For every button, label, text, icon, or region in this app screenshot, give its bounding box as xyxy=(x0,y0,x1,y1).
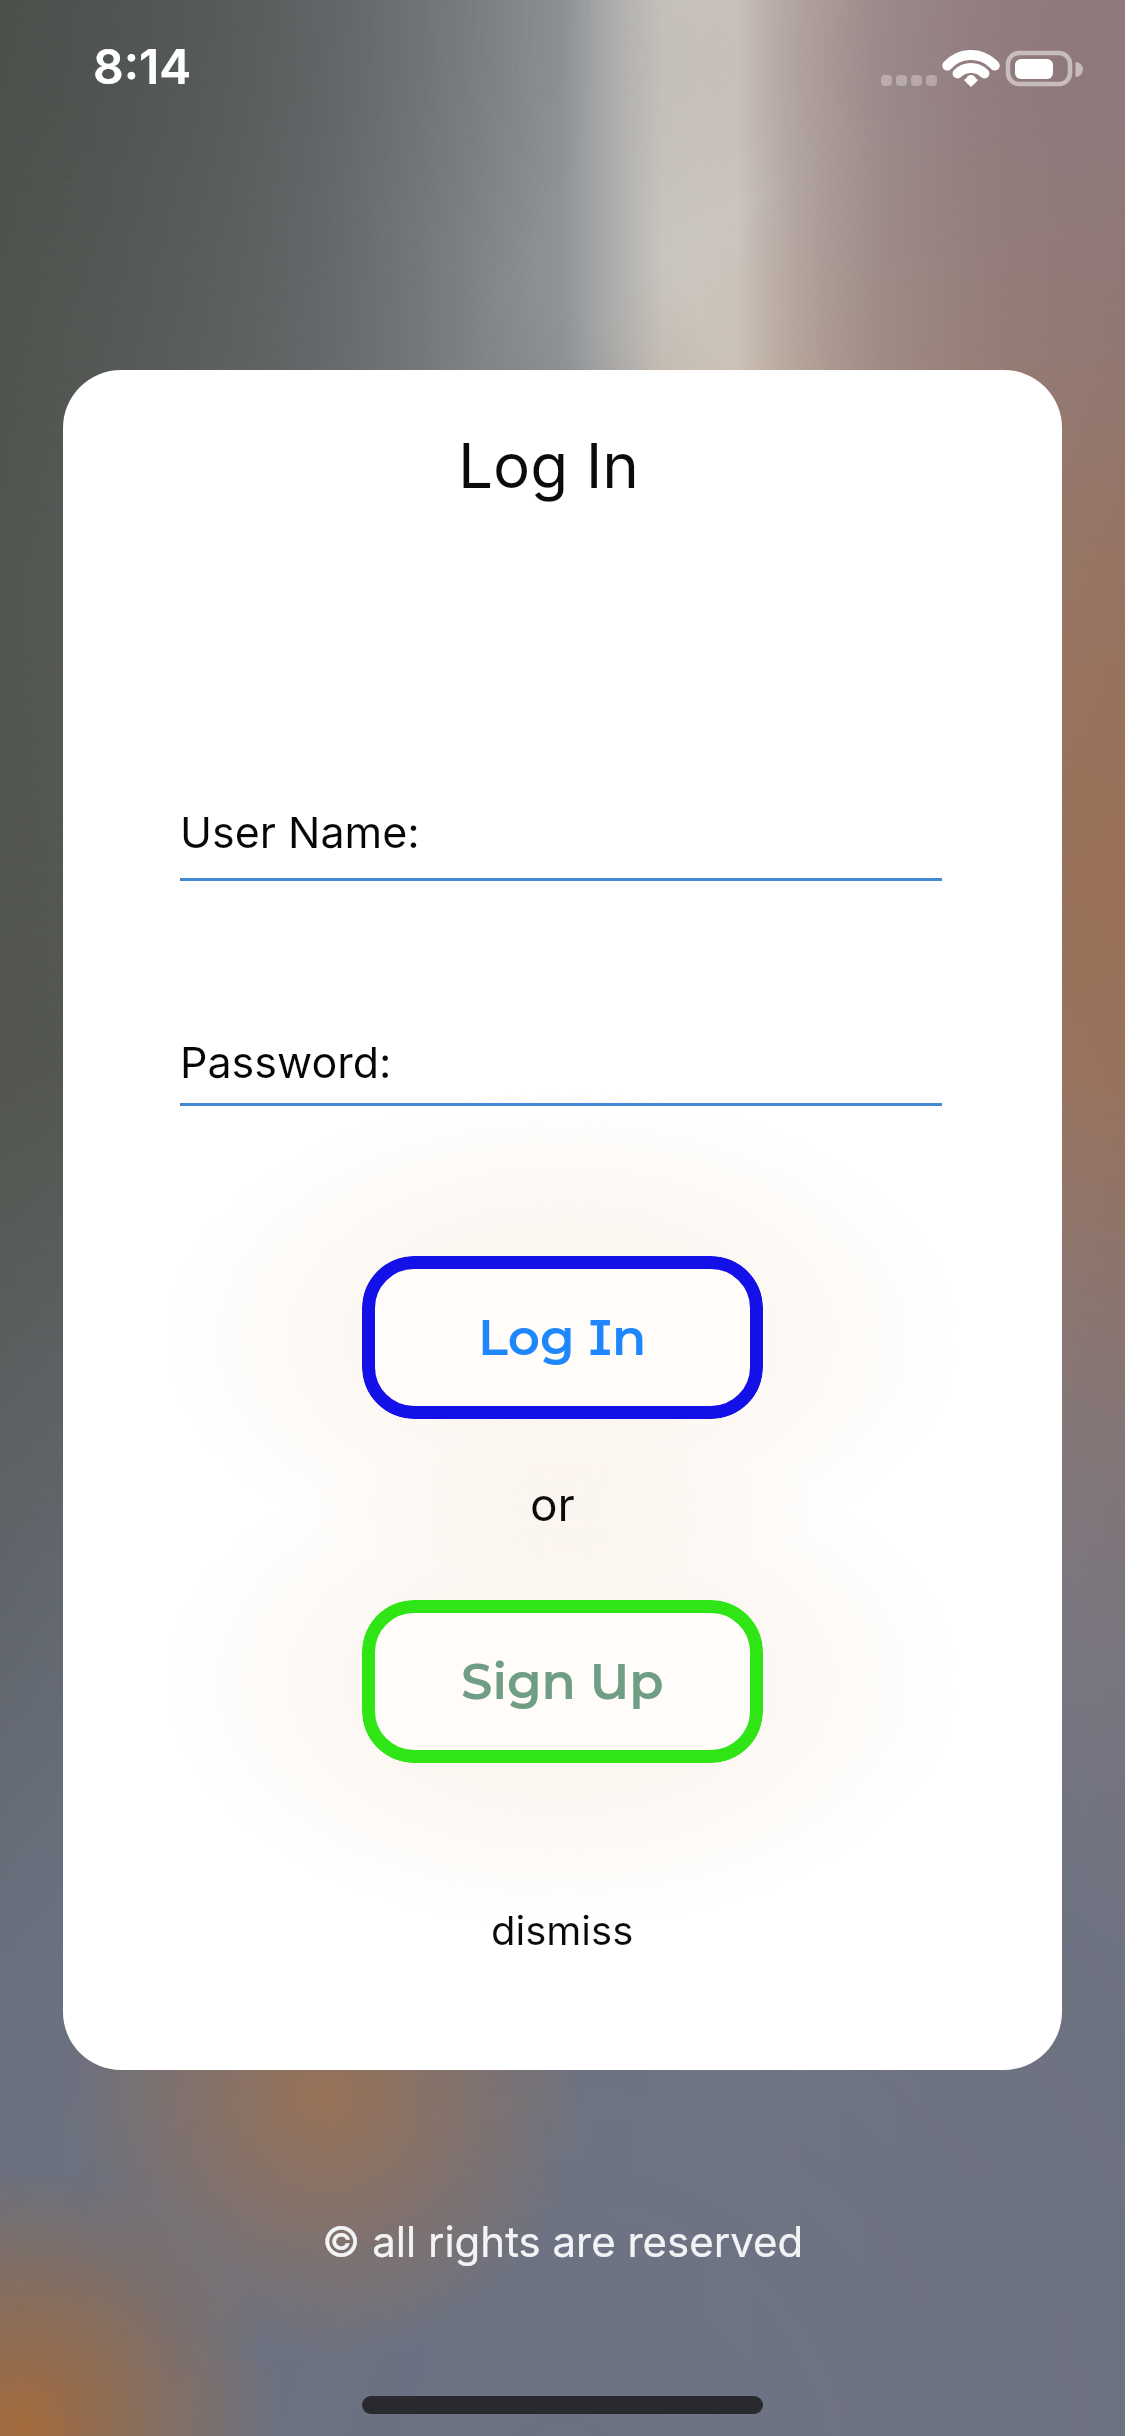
staticText: Log In xyxy=(478,1307,647,1368)
staticText: User Name: xyxy=(180,806,420,858)
button[interactable]: Password: xyxy=(180,1036,942,1131)
button[interactable]: Sign Up xyxy=(362,1600,763,1763)
staticText: or xyxy=(530,1476,575,1532)
button[interactable]: User Name: xyxy=(180,806,942,901)
staticText: Sign Up xyxy=(461,1651,664,1712)
staticText: Log In xyxy=(458,428,639,503)
staticText: 8:14 xyxy=(93,37,192,95)
staticText: Password: xyxy=(180,1036,392,1088)
staticText: dismiss xyxy=(491,1906,634,1954)
button[interactable]: dismiss xyxy=(491,1906,634,1954)
button[interactable]: Log In xyxy=(362,1256,763,1419)
staticText: © all rights are reserved xyxy=(322,2216,804,2267)
